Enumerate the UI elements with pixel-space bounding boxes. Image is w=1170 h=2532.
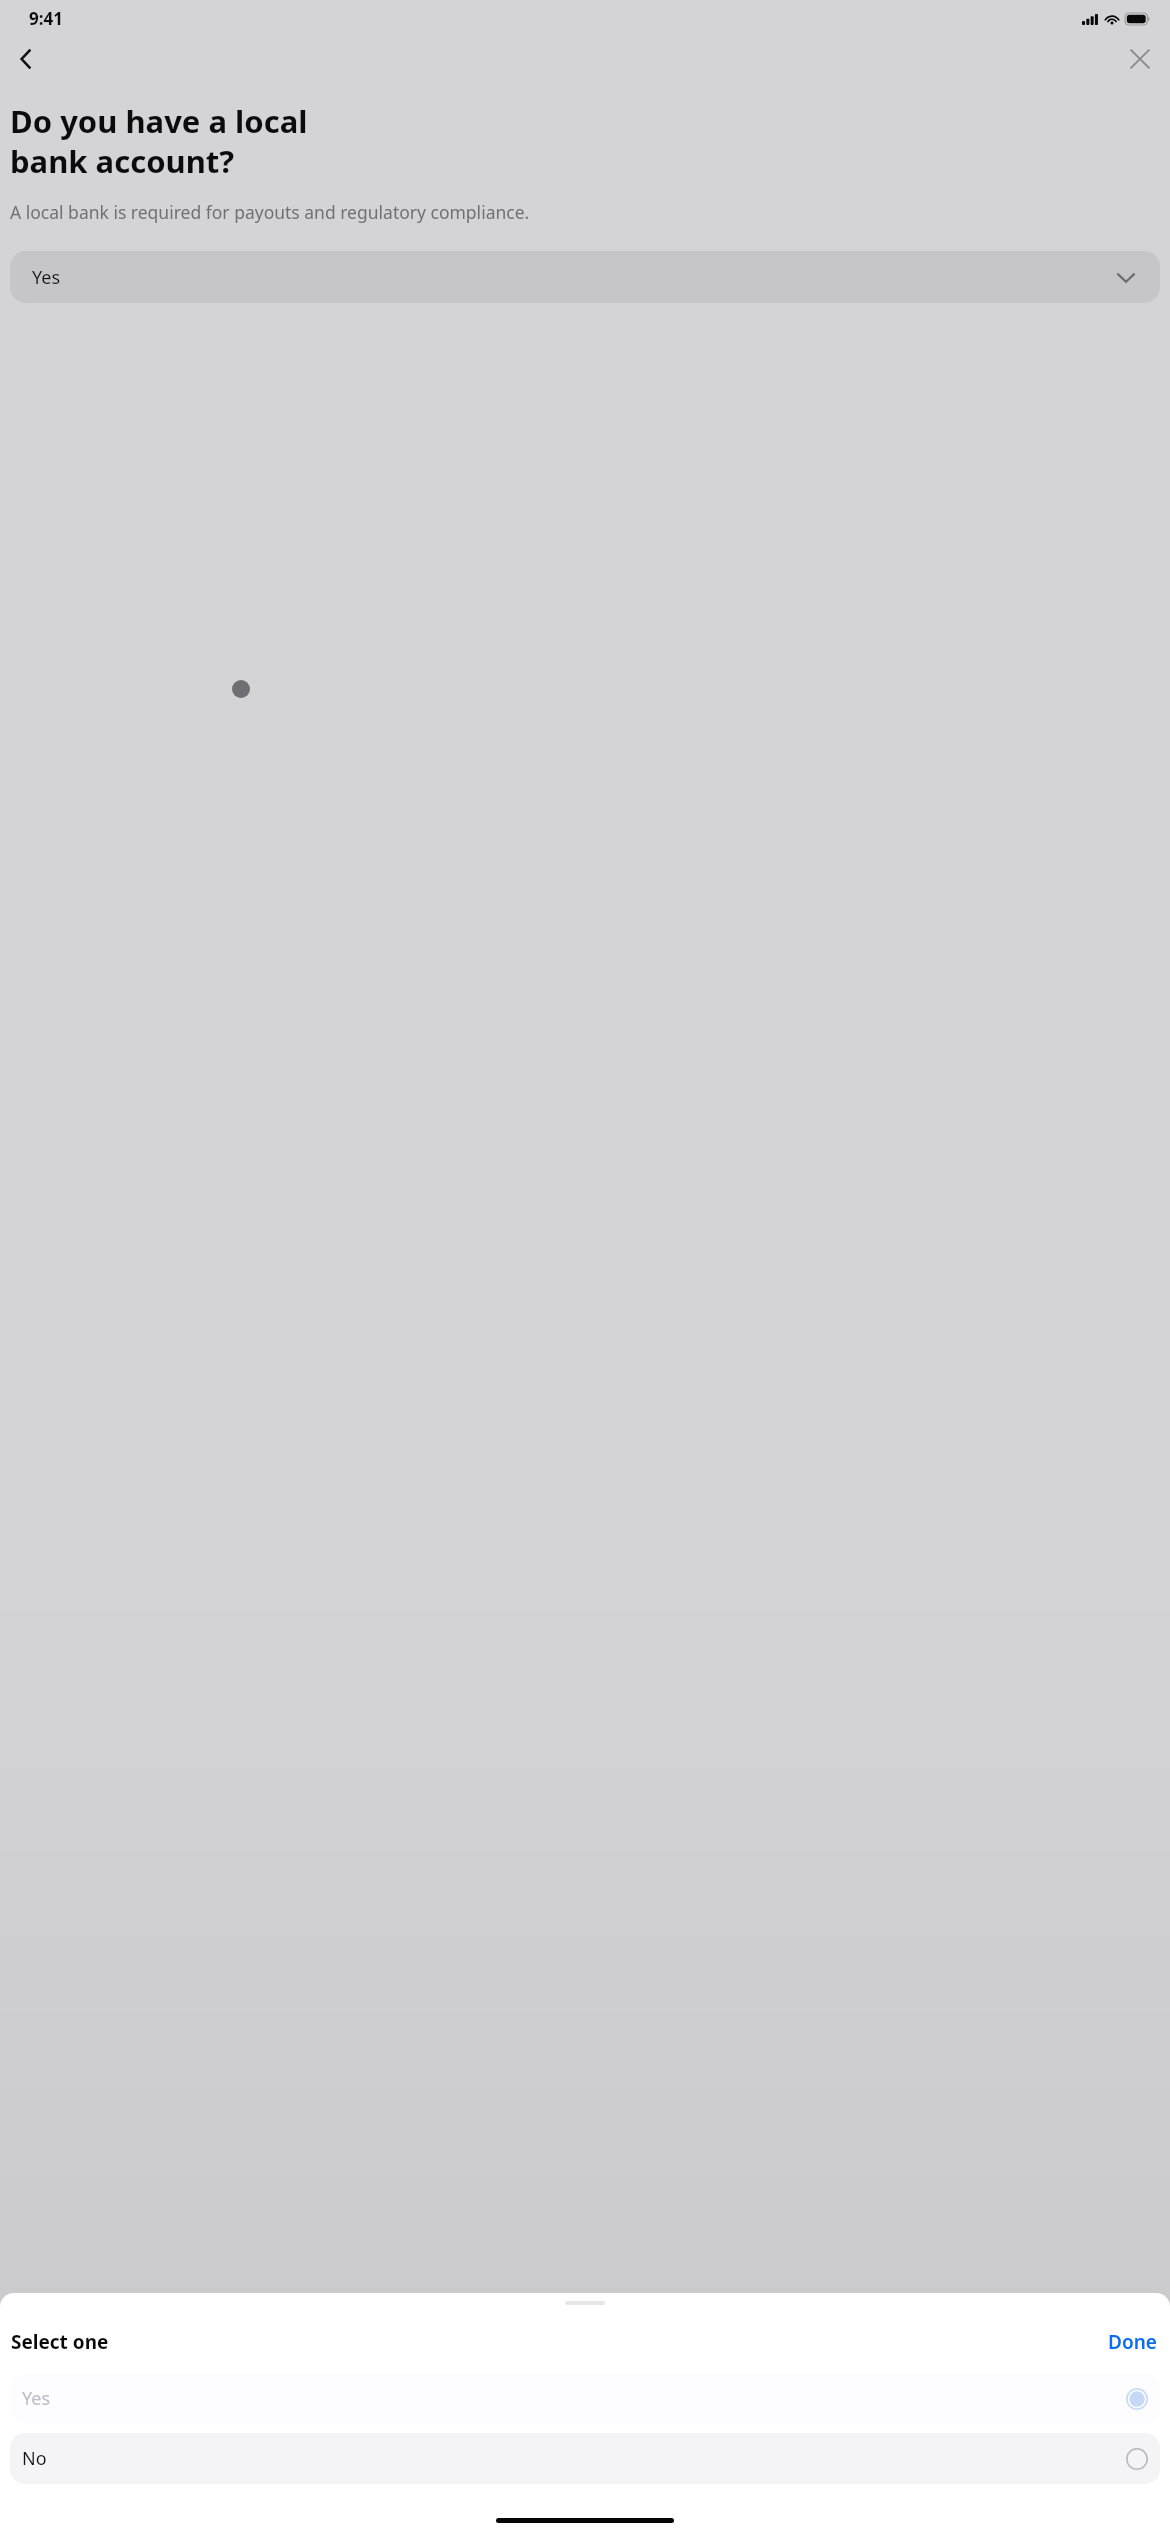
staticText: Do you have a local bank account? (10, 100, 308, 182)
button[interactable]: Yes (10, 251, 1160, 303)
staticText: No (22, 2446, 47, 2471)
button[interactable]: Close (1118, 37, 1162, 81)
staticText: Yes (22, 2386, 51, 2411)
staticText: Done (1108, 2329, 1157, 2355)
button[interactable]: Done (1106, 2325, 1159, 2359)
button[interactable]: Back (4, 37, 48, 81)
staticText: A local bank is required for payouts and… (10, 200, 530, 224)
staticText: 9:41 (29, 7, 63, 30)
staticText: Select one (11, 2329, 109, 2355)
staticText: Yes (32, 265, 61, 290)
button[interactable]: Yes (10, 2373, 1160, 2424)
button[interactable]: No (10, 2433, 1160, 2484)
